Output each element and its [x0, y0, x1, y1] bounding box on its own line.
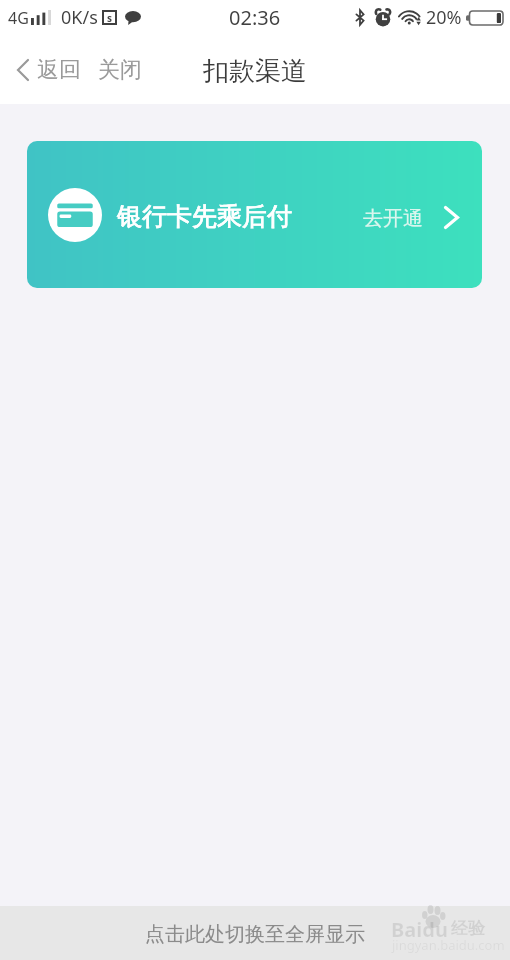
staticText: 去开通: [363, 206, 423, 231]
button[interactable]: 关闭: [84, 48, 150, 92]
button[interactable]: 点击此处切换至全屏显示: [0, 906, 510, 960]
staticText: 点击此处切换至全屏显示: [145, 922, 365, 947]
staticText: 扣款渠道: [203, 55, 307, 88]
staticText: 返回: [37, 56, 81, 84]
staticText: s: [107, 11, 113, 24]
staticText: 经验: [451, 918, 485, 939]
staticText: 4G: [8, 7, 29, 29]
staticText: 0K/s: [61, 5, 98, 30]
button[interactable]: 银行卡先乘后付: [27, 141, 482, 288]
staticText: 02:36: [229, 4, 281, 31]
other: 打开: [444, 206, 459, 229]
staticText: jingyan.baidu.com: [392, 936, 505, 954]
button[interactable]: 返回: [0, 48, 84, 92]
staticText: 20%: [426, 5, 462, 30]
staticText: 银行卡先乘后付: [117, 201, 292, 232]
staticText: 银行卡先乘后付: [117, 201, 292, 232]
staticText: Baidu: [391, 916, 448, 943]
